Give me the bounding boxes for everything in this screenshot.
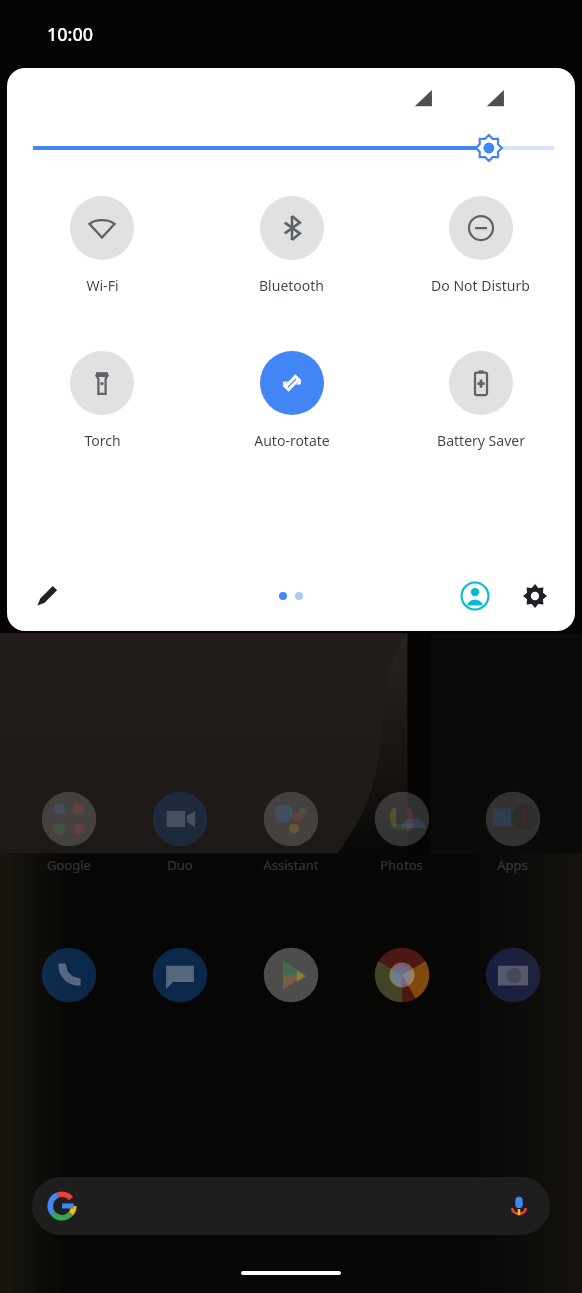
button[interactable]: Bluetooth: [197, 196, 386, 295]
staticText: Apps: [497, 856, 528, 874]
button[interactable]: Settings: [513, 574, 557, 618]
button[interactable]: Duo: [124, 790, 235, 874]
other: Signal: [413, 87, 435, 109]
staticText: Bluetooth: [259, 276, 324, 295]
button[interactable]: Assistant: [235, 790, 346, 874]
staticText: Assistant: [263, 856, 319, 874]
button[interactable]: Brightness: [7, 128, 575, 168]
button[interactable]: Wi-Fi: [7, 196, 197, 295]
button[interactable]: Messages: [124, 946, 235, 1004]
staticText: Battery Saver: [437, 431, 525, 450]
button[interactable]: Camera: [457, 946, 568, 1004]
other: Signal: [485, 87, 507, 109]
button[interactable]: Apps: [457, 790, 568, 874]
staticText: Google: [47, 856, 91, 874]
staticText: Auto-rotate: [254, 431, 330, 450]
button[interactable]: Edit tiles: [25, 574, 69, 618]
button[interactable]: Play Store: [235, 946, 346, 1004]
button[interactable]: Auto-rotate: [197, 351, 386, 450]
button[interactable]: Do Not Disturb: [386, 196, 575, 295]
staticText: 10:00: [47, 22, 94, 47]
staticText: Do Not Disturb: [431, 276, 530, 295]
button[interactable]: Chrome: [346, 946, 457, 1004]
staticText: Photos: [380, 856, 423, 874]
staticText: Torch: [84, 431, 121, 450]
staticText: Wi-Fi: [86, 276, 119, 295]
button[interactable]: Search: [32, 1177, 550, 1235]
button[interactable]: Google: [14, 790, 124, 874]
button[interactable]: Photos: [346, 790, 457, 874]
button[interactable]: Phone: [14, 946, 124, 1004]
button[interactable]: Battery Saver: [386, 351, 575, 450]
button[interactable]: User: [453, 574, 497, 618]
button[interactable]: Torch: [7, 351, 197, 450]
staticText: Duo: [167, 856, 193, 874]
